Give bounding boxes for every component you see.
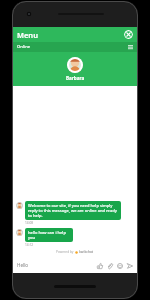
button[interactable]: Hello [17,262,96,268]
staticText: 14:08 [25,221,34,225]
staticText: Welcome to our site, if you need help si… [28,203,118,218]
button[interactable]: Welcome to our site, if you need help si… [25,201,121,220]
button[interactable]: Send like [96,262,103,269]
button[interactable]: Menu [17,30,38,40]
button[interactable]: Insert emoji [116,262,123,269]
staticText: hello how can i help you [28,230,70,240]
button[interactable]: Agent Barbara avatar [67,57,83,73]
button[interactable]: Close chat [124,30,133,39]
staticText: kwikchat [79,250,94,254]
staticText: 14:12 [25,243,34,247]
button[interactable]: Menu options [127,44,133,50]
button[interactable]: Attach file [106,262,113,269]
button[interactable]: hello how can i help you [25,228,73,242]
staticText: Barbara [66,75,85,81]
button[interactable]: Send message [126,262,133,269]
button[interactable]: Online [17,44,31,50]
staticText: Powered by [56,250,74,254]
staticText: Hello [17,262,29,268]
